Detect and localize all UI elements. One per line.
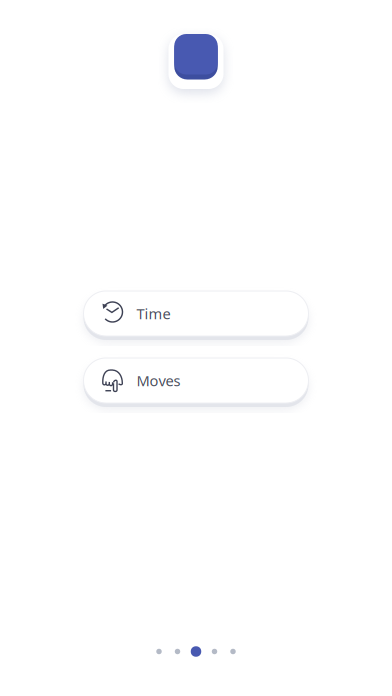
button[interactable]: Time: [83, 291, 308, 336]
button[interactable]: Moves: [83, 358, 308, 403]
staticText: Moves: [136, 371, 180, 390]
staticText: Time: [136, 304, 170, 323]
